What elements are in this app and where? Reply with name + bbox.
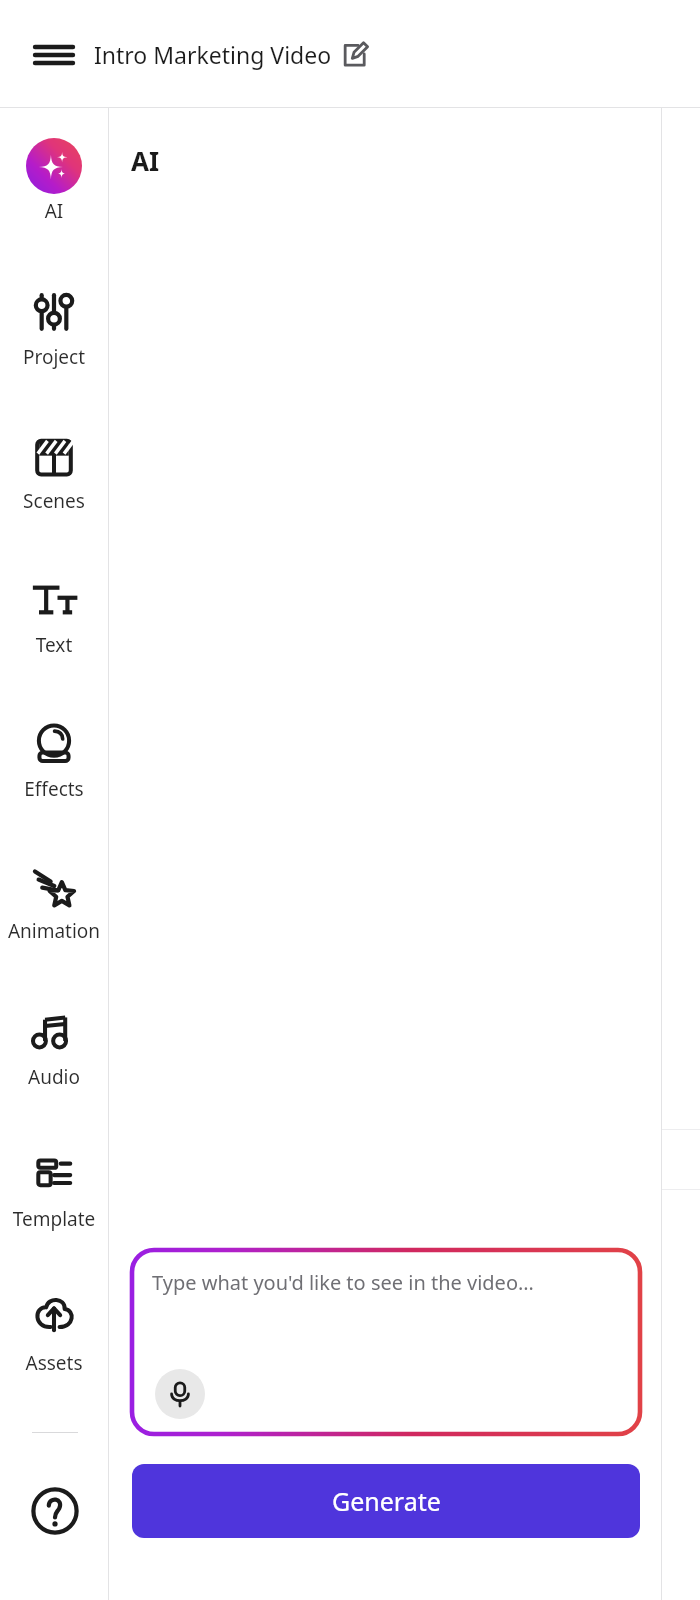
button[interactable]: Audio xyxy=(0,1004,108,1102)
staticText: Type what you'd like to see in the video… xyxy=(152,1269,534,1296)
button[interactable]: Type what you'd like to see in the video… xyxy=(132,1250,640,1434)
button[interactable]: Effects xyxy=(0,716,108,814)
button[interactable]: Generate xyxy=(132,1464,640,1538)
button[interactable]: AI xyxy=(0,138,108,236)
button[interactable]: Voice input xyxy=(155,1369,205,1419)
button[interactable]: Project xyxy=(0,284,108,382)
button[interactable]: Rename xyxy=(337,38,371,72)
staticText: Intro Marketing Video xyxy=(94,39,332,70)
button[interactable]: Help xyxy=(28,1484,82,1538)
button[interactable]: Animation xyxy=(0,858,108,956)
button[interactable]: Scenes xyxy=(0,428,108,526)
staticText: Animation xyxy=(0,918,108,944)
button[interactable]: Assets xyxy=(0,1290,108,1388)
staticText: Scenes xyxy=(0,488,108,514)
staticText: AI xyxy=(0,198,108,224)
button[interactable]: Template xyxy=(0,1146,108,1244)
staticText: Project xyxy=(0,344,108,370)
button[interactable]: Menu xyxy=(28,34,80,76)
button[interactable]: Text xyxy=(0,572,108,670)
staticText: AI xyxy=(131,143,160,178)
staticText: Generate xyxy=(332,1484,441,1518)
staticText: Audio xyxy=(0,1064,108,1090)
staticText: Text xyxy=(0,632,108,658)
staticText: Effects xyxy=(0,776,108,802)
staticText: Template xyxy=(0,1206,108,1232)
staticText: Assets xyxy=(0,1350,108,1376)
